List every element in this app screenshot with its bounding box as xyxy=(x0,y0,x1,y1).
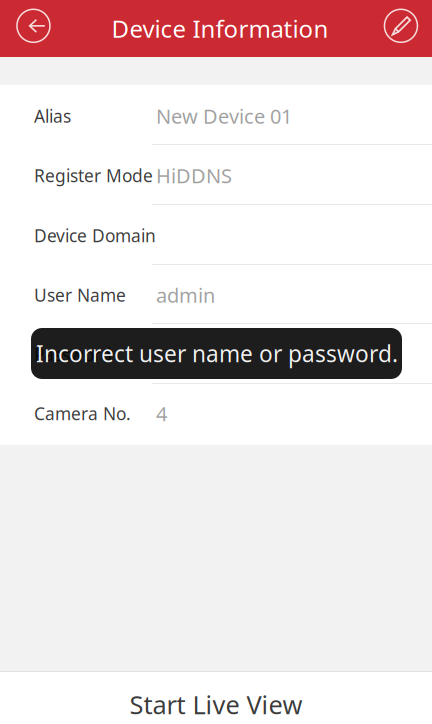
staticText: admin xyxy=(156,282,215,308)
staticText: New Device 01 xyxy=(156,103,292,129)
staticText: Start Live View xyxy=(129,688,302,721)
staticText: User Name xyxy=(34,283,126,306)
staticText: HiDDNS xyxy=(156,162,232,189)
button[interactable]: Register Mode xyxy=(0,144,432,204)
staticText: Alias xyxy=(34,104,71,127)
button[interactable]: Alias xyxy=(0,85,432,144)
staticText: Camera No. xyxy=(34,402,131,425)
staticText: Incorrect user name or password. xyxy=(36,338,398,368)
button[interactable]: User Name xyxy=(0,264,432,323)
button[interactable]: Edit xyxy=(378,3,424,49)
staticText: 4 xyxy=(156,400,167,427)
button[interactable]: Back xyxy=(10,3,56,49)
staticText: Register Mode xyxy=(34,164,153,187)
staticText: Device Domain xyxy=(34,224,156,247)
staticText: Password xyxy=(34,343,112,366)
button[interactable]: Password xyxy=(0,323,432,383)
button[interactable]: Start Live View xyxy=(0,671,432,724)
button[interactable]: Camera No. xyxy=(0,383,432,444)
staticText: Device Information xyxy=(111,13,328,44)
button[interactable]: Device Domain xyxy=(0,204,432,264)
